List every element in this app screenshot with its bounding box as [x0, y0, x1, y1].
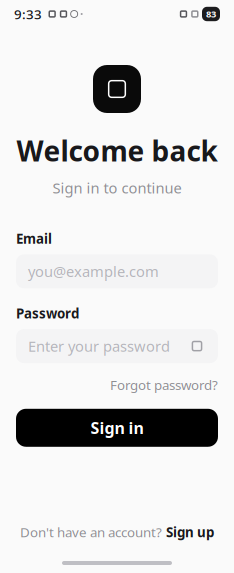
staticText: Forgot password?	[110, 376, 218, 394]
staticText: Password	[16, 304, 79, 322]
staticText: Sign up	[166, 523, 214, 541]
staticText: 83	[206, 8, 216, 20]
staticText: Sign in to continue	[52, 178, 181, 198]
button[interactable]: Forgot password?	[110, 373, 218, 397]
button[interactable]: Sign in	[16, 409, 218, 447]
button[interactable]: Show password	[188, 337, 206, 355]
staticText: Email	[16, 230, 52, 247]
staticText: 9:33	[14, 5, 42, 23]
staticText: Don't have an account?	[20, 523, 162, 541]
button[interactable]: Don't have an account?	[12, 519, 222, 545]
staticText: Welcome back	[16, 132, 217, 169]
staticText: Sign in	[90, 417, 143, 438]
staticText: Enter your password	[28, 336, 170, 356]
staticText: you@example.com	[28, 262, 159, 281]
